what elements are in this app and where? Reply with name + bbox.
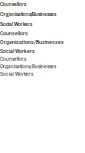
staticText: Counsellors	[0, 56, 26, 62]
staticText: Organisations/Businesses	[0, 10, 56, 18]
staticText: Counsellors	[0, 30, 28, 37]
staticText: Social Workers	[0, 20, 32, 28]
staticText: Organisations/Businesses	[0, 64, 56, 69]
staticText: Counsellors	[0, 0, 26, 8]
staticText: Social Workers	[0, 47, 35, 54]
staticText: Social Workers	[0, 71, 33, 77]
staticText: Organisations/Businesses	[0, 39, 64, 45]
